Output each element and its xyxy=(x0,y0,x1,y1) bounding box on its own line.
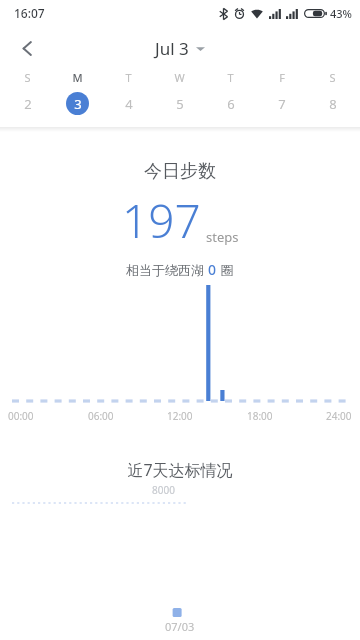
staticText: 06:00 xyxy=(88,409,114,423)
staticText: 0 xyxy=(208,260,217,279)
staticText: 今日步数 xyxy=(0,160,360,183)
staticText: 43% xyxy=(330,6,352,21)
staticText: M xyxy=(72,70,83,85)
button[interactable]: T xyxy=(103,70,154,115)
button[interactable]: M xyxy=(52,70,103,115)
button[interactable]: W xyxy=(154,70,205,115)
button[interactable]: F xyxy=(256,70,307,115)
button[interactable]: Jul 3 xyxy=(149,33,211,64)
staticText: 24:00 xyxy=(326,409,352,423)
staticText: 8 xyxy=(329,95,337,113)
staticText: 8000 xyxy=(152,483,175,497)
staticText: S xyxy=(329,70,336,85)
button[interactable]: Back xyxy=(6,27,48,69)
staticText: 07/03 xyxy=(165,619,195,634)
staticText: Jul 3 xyxy=(155,37,189,60)
staticText: 相当于绕西湖 xyxy=(126,261,208,279)
staticText: T xyxy=(227,70,234,85)
staticText: W xyxy=(174,70,185,85)
staticText: S xyxy=(24,70,31,85)
staticText: 7 xyxy=(278,95,286,113)
staticText: 5 xyxy=(176,95,184,113)
button[interactable]: T xyxy=(205,70,256,115)
staticText: steps xyxy=(206,228,239,246)
button[interactable]: S xyxy=(2,70,52,115)
button[interactable]: S xyxy=(307,70,358,115)
staticText: 00:00 xyxy=(8,409,34,423)
staticText: 圈 xyxy=(217,261,234,279)
staticText: 18:00 xyxy=(247,409,273,423)
staticText: 16:07 xyxy=(14,5,45,21)
staticText: F xyxy=(279,70,285,85)
staticText: 2 xyxy=(24,95,32,113)
staticText: 近7天达标情况 xyxy=(0,459,360,481)
staticText: 12:00 xyxy=(167,409,193,423)
staticText: 197 xyxy=(122,189,201,252)
staticText: 4 xyxy=(125,95,133,113)
staticText: 6 xyxy=(227,95,235,113)
staticText: 3 xyxy=(74,95,82,113)
staticText: T xyxy=(125,70,132,85)
